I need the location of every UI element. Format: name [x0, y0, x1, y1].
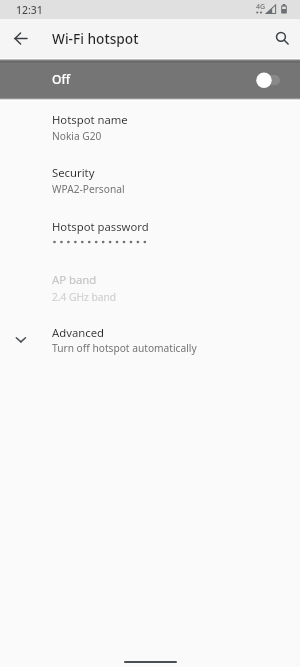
staticText: 2.4 GHz band [52, 290, 116, 304]
button[interactable]: Navigate up [2, 20, 39, 57]
staticText: 12:31 [16, 3, 43, 17]
staticText: Off [52, 71, 70, 87]
button[interactable]: Security [0, 152, 300, 206]
staticText: AP band [52, 272, 97, 287]
other: Home [124, 661, 177, 663]
button[interactable]: AP band [0, 259, 300, 312]
staticText: Advanced [52, 325, 104, 340]
button[interactable]: Off [0, 59, 300, 98]
staticText: Wi-Fi hotspot [52, 29, 139, 48]
button[interactable]: Hotspot password [0, 206, 300, 259]
button[interactable]: Hotspot name [0, 101, 300, 152]
button[interactable]: Search [264, 20, 300, 57]
staticText: Turn off hotspot automatically [52, 341, 197, 355]
staticText: Nokia G20 [52, 129, 102, 143]
button[interactable]: Advanced [0, 312, 300, 366]
other: Hotspot off [252, 72, 286, 88]
staticText: Hotspot password [52, 219, 149, 234]
staticText: 4G [256, 2, 266, 12]
staticText: WPA2-Personal [52, 182, 125, 196]
staticText: Security [52, 165, 95, 180]
staticText: Hotspot name [52, 112, 128, 127]
